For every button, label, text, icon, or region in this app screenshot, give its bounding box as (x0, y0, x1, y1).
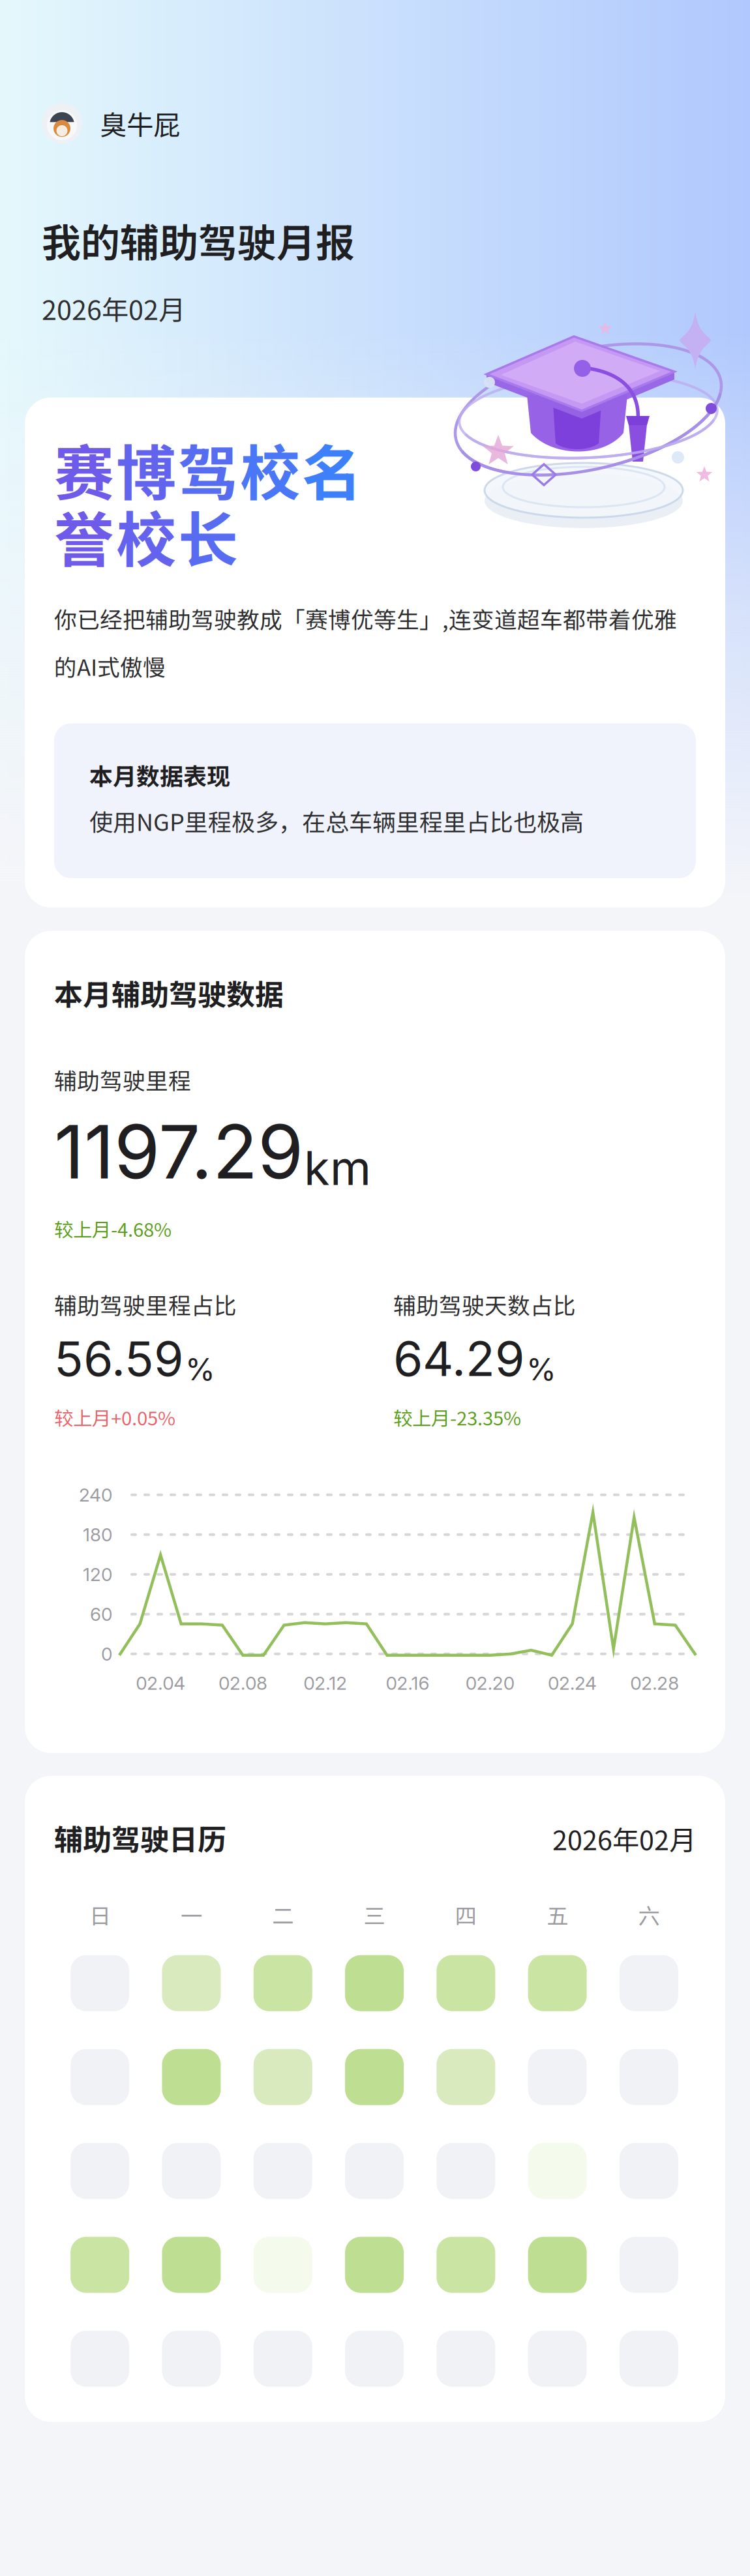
staticText: 一 (181, 1899, 202, 1930)
staticText: % (185, 1351, 215, 1388)
staticText: 二 (272, 1899, 294, 1930)
staticText: 2026年02月 (42, 289, 185, 328)
staticText: 较上月+0.05% (54, 1403, 175, 1431)
staticText: 2026年02月 (552, 1819, 696, 1858)
staticText: 02.20 (466, 1672, 514, 1694)
staticText: 240 (79, 1484, 112, 1506)
staticText: 02.08 (218, 1672, 267, 1694)
staticText: 六 (638, 1899, 660, 1930)
staticText: 1197.29 (54, 1107, 303, 1196)
staticText: 02.12 (303, 1672, 347, 1694)
staticText: 本月数据表现 (89, 758, 230, 792)
staticText: 0 (101, 1643, 112, 1665)
staticText: 驾 (178, 426, 238, 512)
staticText: 02.28 (630, 1672, 679, 1694)
staticText: 我的辅助驾驶月报 (42, 212, 355, 269)
staticText: 较上月-23.35% (393, 1403, 521, 1431)
staticText: 本月辅助驾驶数据 (54, 972, 284, 1014)
staticText: 02.04 (136, 1672, 185, 1694)
staticText: 四 (455, 1899, 477, 1930)
staticText: % (526, 1351, 556, 1388)
staticText: 博 (116, 426, 176, 512)
staticText: 五 (547, 1899, 568, 1930)
staticText: km (304, 1139, 371, 1196)
button[interactable]: 臭牛屁 (42, 103, 180, 143)
staticText: 辅助驾驶里程占比 (54, 1288, 237, 1321)
staticText: 180 (83, 1524, 112, 1546)
staticText: 120 (83, 1563, 112, 1585)
staticText: 三 (364, 1899, 385, 1930)
staticText: 使用NGP里程极多，在总车辆里程里占比也极高 (89, 804, 584, 838)
staticText: 56.59 (54, 1330, 183, 1388)
staticText: 臭牛屁 (100, 104, 180, 143)
staticText: 辅助驾驶天数占比 (393, 1288, 576, 1321)
staticText: 辅助驾驶日历 (54, 1817, 226, 1858)
staticText: 长 (178, 492, 238, 579)
staticText: 赛 (54, 426, 114, 512)
staticText: 02.24 (548, 1672, 597, 1694)
staticText: 64.29 (393, 1330, 524, 1388)
staticText: 较上月-4.68% (54, 1215, 172, 1242)
staticText: 校 (240, 426, 300, 512)
staticText: 校 (116, 492, 176, 579)
staticText: 辅助驾驶里程 (54, 1063, 191, 1096)
staticText: 你已经把辅助驾驶教成「赛博优等生」,连变道超车都带着优雅的AI式傲慢 (54, 602, 677, 682)
staticText: 名 (302, 426, 362, 512)
staticText: 60 (90, 1603, 112, 1625)
staticText: 02.16 (386, 1672, 429, 1694)
staticText: 誉 (54, 492, 114, 579)
staticText: 日 (89, 1899, 111, 1930)
